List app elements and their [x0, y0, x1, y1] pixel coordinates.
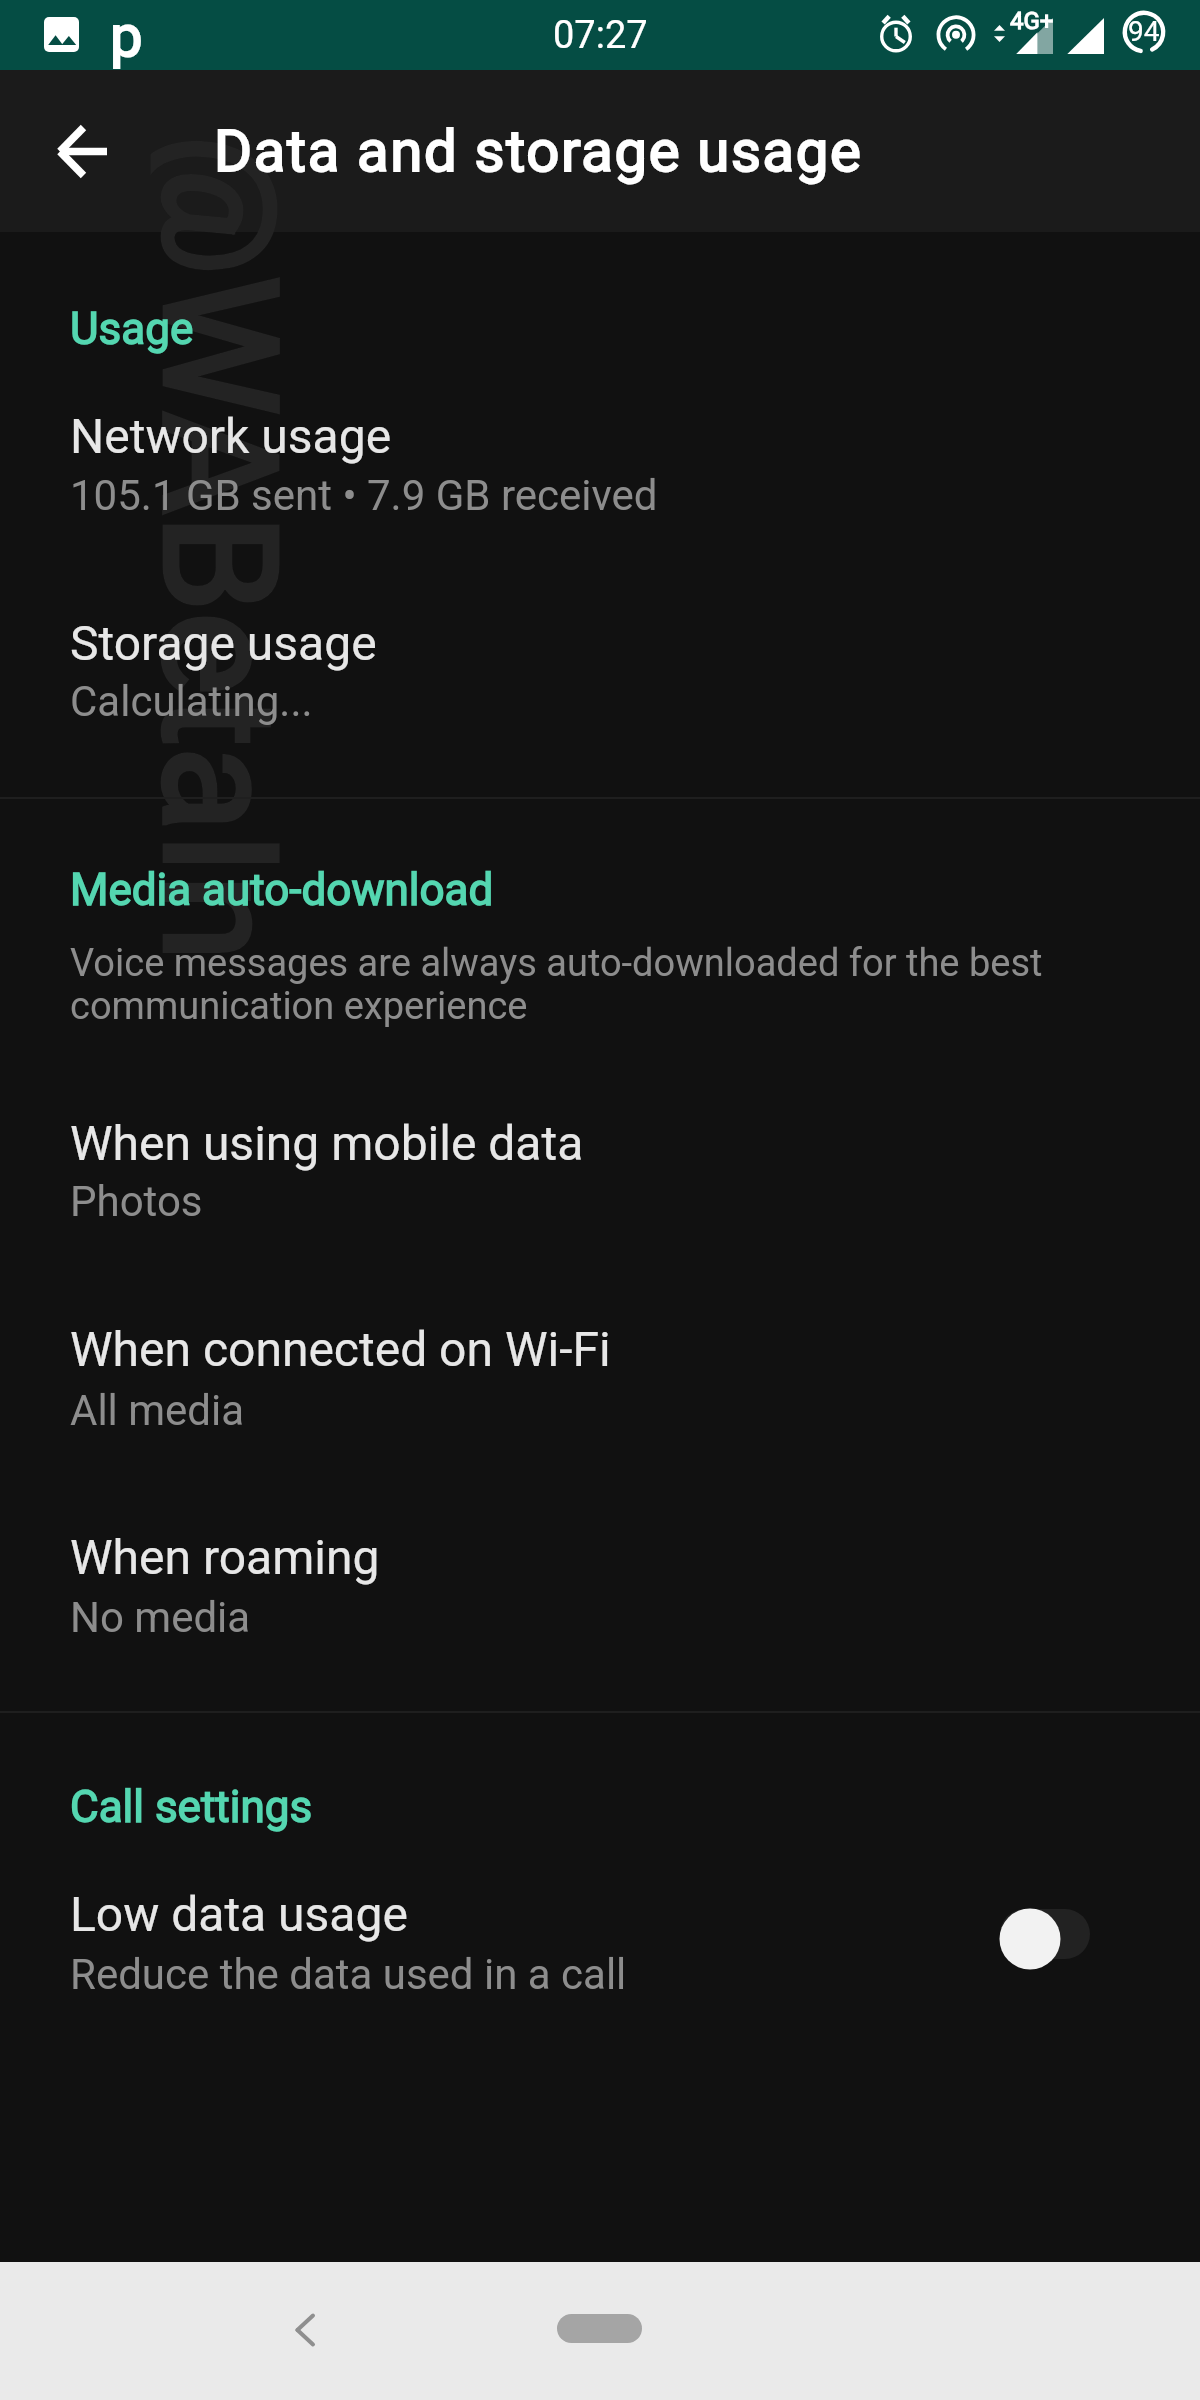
button[interactable]: Media auto-download [70, 864, 494, 916]
button[interactable]: Storage usage [0, 593, 1200, 735]
staticText: All media [70, 1386, 245, 1435]
staticText: @WABetaInfo [150, 134, 310, 989]
button[interactable]: Back [257, 2282, 353, 2378]
staticText: Reduce the data used in a call [70, 1950, 627, 1999]
staticText: Call settings [70, 1781, 313, 1833]
button[interactable]: Low data usage [0, 1864, 1200, 2008]
staticText: Calculating... [70, 677, 313, 726]
staticText: Data and storage usage [214, 117, 863, 185]
staticText: 105.1 GB sent • 7.9 GB received [70, 471, 658, 520]
staticText: No media [70, 1593, 251, 1642]
button[interactable]: Usage [70, 303, 194, 355]
staticText: Low data usage [70, 1886, 408, 1942]
staticText: Storage usage [70, 615, 377, 671]
button[interactable]: Back [30, 99, 134, 203]
button[interactable]: Call settings [70, 1781, 313, 1833]
staticText: Network usage [70, 408, 392, 464]
button[interactable]: Home [557, 2314, 642, 2343]
button[interactable]: When roaming [0, 1507, 1200, 1651]
staticText: When roaming [70, 1529, 380, 1585]
staticText: 4G+ [1010, 7, 1054, 35]
button[interactable]: When connected on Wi-Fi [0, 1299, 1200, 1444]
button[interactable]: When using mobile data [0, 1093, 1200, 1235]
staticText: When connected on Wi-Fi [70, 1321, 611, 1377]
staticText: Voice messages are always auto-downloade… [70, 941, 1060, 1028]
staticText: Media auto-download [70, 864, 494, 916]
button[interactable]: Low data usage toggle [970, 1880, 1130, 2000]
staticText: p [110, 2, 143, 70]
staticText: Photos [70, 1177, 203, 1226]
button[interactable]: Network usage [0, 386, 1200, 529]
staticText: Usage [70, 303, 194, 355]
staticText: 94 [1128, 15, 1160, 48]
staticText: When using mobile data [70, 1115, 584, 1171]
staticText: 07:27 [553, 13, 648, 58]
